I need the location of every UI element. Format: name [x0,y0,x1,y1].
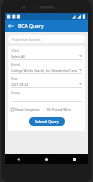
button[interactable]: Period Wise [44,106,71,113]
staticText: Brand [11,63,20,67]
button[interactable]: Date [11,77,82,88]
button[interactable]: Recent apps [60,154,88,164]
button[interactable]: Client [11,49,82,60]
button[interactable]: Brand [11,63,82,74]
staticText: Franchise Search [12,37,41,42]
staticText: Select All [11,54,79,58]
staticText: Client [11,49,20,53]
staticText: Submit Query [35,119,59,124]
button[interactable]: Show Inception [11,106,40,113]
button[interactable]: Franchise Search [8,35,85,43]
staticText: Period Wise [52,107,71,112]
staticText: College Works Search, Inc Residential Co… [11,68,79,72]
button[interactable]: Home [32,154,60,164]
staticText: Date [11,77,18,81]
staticText: Show Inception [15,107,40,112]
button[interactable]: Submit Query [29,117,65,126]
button[interactable]: Navigate up [5,20,17,32]
button[interactable]: Back [5,154,32,164]
staticText: Group [11,91,21,95]
button[interactable]: Group [11,91,82,102]
staticText: 2021-08-24 [11,82,79,86]
staticText: BCA Query [18,23,44,30]
